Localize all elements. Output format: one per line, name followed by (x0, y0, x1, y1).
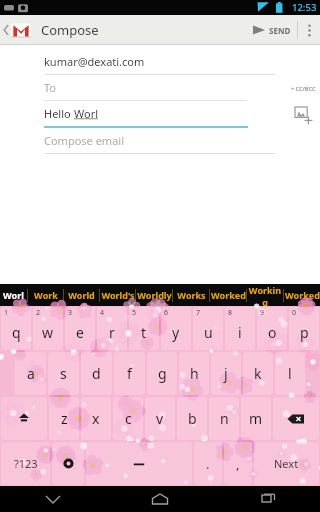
staticText: o (268, 323, 277, 342)
button[interactable]: Space (86, 442, 192, 485)
staticText: Worldly (137, 289, 172, 301)
button[interactable]: d (81, 352, 112, 395)
button[interactable]: Next (254, 442, 319, 485)
staticText: 6 (164, 308, 169, 318)
staticText: SEND (269, 25, 291, 36)
button[interactable]: x (81, 397, 111, 440)
button[interactable]: z (49, 397, 79, 440)
button[interactable]: Delete (273, 397, 319, 440)
button[interactable]: More options (298, 15, 320, 45)
staticText: Hello (44, 106, 74, 121)
staticText: s (60, 364, 67, 383)
button[interactable]: Back (0, 15, 35, 45)
button[interactable]: Symbols (1, 442, 50, 485)
staticText: j (224, 364, 228, 383)
staticText: t (141, 323, 147, 342)
button[interactable]: Worked (284, 284, 320, 306)
staticText: kumar@dexati.com (44, 54, 145, 69)
staticText: y (172, 323, 180, 342)
button[interactable]: Comma (224, 442, 252, 485)
staticText: Work (34, 289, 58, 301)
staticText: To (44, 80, 57, 95)
staticText: 7 (196, 308, 201, 318)
staticText: + CC/BCC (291, 85, 316, 92)
button[interactable]: v (145, 397, 175, 440)
button[interactable]: Worked (210, 284, 246, 306)
button[interactable]: f (114, 352, 145, 395)
button[interactable]: 1 (1, 307, 31, 350)
button[interactable]: 9 (257, 307, 287, 350)
button[interactable]: 6 (161, 307, 191, 350)
staticText: c (125, 409, 132, 428)
button[interactable]: k (243, 352, 273, 395)
button[interactable]: Period (194, 442, 222, 485)
staticText: 4 (100, 308, 105, 318)
button[interactable]: 3 (65, 307, 95, 350)
button[interactable]: Work (28, 284, 63, 306)
button[interactable]: g (147, 352, 177, 395)
staticText: ?123 (14, 456, 38, 471)
button[interactable]: n (209, 397, 239, 440)
button[interactable]: Shift (1, 397, 47, 440)
staticText: n (220, 409, 229, 428)
button[interactable]: h (179, 352, 209, 395)
staticText: Worked (285, 289, 320, 301)
button[interactable]: s (48, 352, 79, 395)
staticText: 0 (292, 308, 297, 318)
staticText: Worked (211, 289, 246, 301)
staticText: e (76, 323, 84, 342)
button[interactable]: 5 (129, 307, 159, 350)
staticText: 3 (68, 308, 73, 318)
button[interactable]: 2 (33, 307, 63, 350)
staticText: r (109, 323, 115, 342)
button[interactable]: kumar@dexati.com (0, 49, 320, 75)
staticText: l (288, 364, 292, 383)
staticText: Compose email (44, 133, 124, 148)
staticText: v (156, 409, 164, 428)
staticText: p (300, 323, 309, 342)
staticText: a (27, 364, 35, 383)
button[interactable]: Working (247, 284, 283, 306)
button[interactable]: World (64, 284, 99, 306)
button[interactable]: 8 (225, 307, 255, 350)
button[interactable]: m (241, 397, 271, 440)
staticText: w (42, 323, 54, 342)
button[interactable]: World's (100, 284, 135, 306)
button[interactable]: c (113, 397, 143, 440)
button[interactable]: j (211, 352, 241, 395)
staticText: 2 (36, 308, 41, 318)
button[interactable]: Back (0, 486, 106, 512)
staticText: h (190, 364, 199, 383)
button[interactable]: + CC/BCC (291, 85, 320, 92)
staticText: World (68, 289, 95, 301)
staticText: Works (177, 289, 206, 301)
staticText: f (127, 364, 132, 383)
button[interactable]: Worl (0, 284, 27, 306)
staticText: k (254, 364, 262, 383)
staticText: World's (101, 289, 135, 301)
button[interactable]: Recent apps (213, 486, 320, 512)
button[interactable]: l (275, 352, 305, 395)
button[interactable]: SEND (246, 15, 297, 45)
staticText: g (158, 364, 167, 383)
button[interactable]: Works (173, 284, 209, 306)
button[interactable]: 0 (289, 307, 319, 350)
button[interactable]: Settings (52, 442, 84, 485)
staticText: u (204, 323, 213, 342)
button[interactable]: Hello (0, 101, 292, 128)
staticText: 5 (132, 308, 137, 318)
button[interactable]: a (15, 352, 46, 395)
staticText: b (188, 409, 197, 428)
button[interactable]: Attach image (292, 104, 320, 126)
button[interactable]: 4 (97, 307, 127, 350)
staticText: , (236, 455, 240, 473)
staticText: 8 (228, 308, 233, 318)
staticText: . (206, 455, 210, 473)
button[interactable]: b (177, 397, 207, 440)
button[interactable]: 7 (193, 307, 223, 350)
button[interactable]: Home (106, 486, 213, 512)
button[interactable]: To (0, 75, 291, 101)
button[interactable]: Compose email (0, 128, 320, 154)
staticText: x (92, 409, 100, 428)
button[interactable]: Worldly (136, 284, 172, 306)
